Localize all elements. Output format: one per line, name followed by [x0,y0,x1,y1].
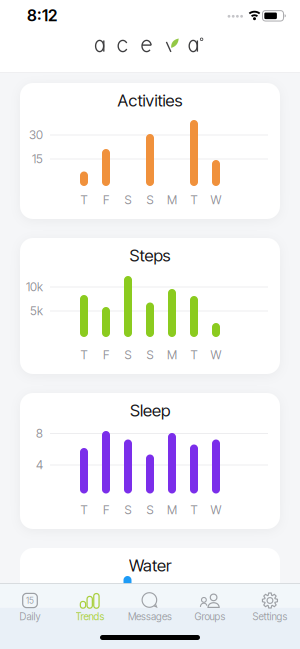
staticText: W [210,348,221,362]
staticText: 30 [29,128,43,142]
staticText: T [190,348,197,362]
staticText: S [124,193,131,207]
staticText: Settings [252,610,287,623]
staticText: S [124,348,131,362]
button[interactable]: Groups [180,584,240,628]
staticText: F [103,193,109,207]
button[interactable]: Activities [20,83,280,219]
staticText: 15 [26,595,34,606]
button[interactable]: 15 [0,584,60,628]
staticText: Trends [75,610,104,623]
staticText: 10k [26,280,43,294]
button[interactable]: Water [20,548,280,649]
staticText: Groups [194,610,225,623]
staticText: S [146,503,153,517]
staticText: 8:12 [27,6,57,25]
staticText: S [146,193,153,207]
staticText: Activities [117,90,182,111]
staticText: Sleep [130,400,170,421]
staticText: Steps [129,245,170,266]
button[interactable]: Messages [120,584,180,628]
button[interactable]: Settings [240,584,300,628]
staticText: T [190,193,197,207]
staticText: M [167,503,177,517]
staticText: W [210,503,221,517]
staticText: T [80,503,87,517]
staticText: S [124,503,131,517]
staticText: T [80,193,87,207]
staticText: M [167,348,177,362]
staticText: T [80,348,87,362]
staticText: Water [129,555,171,576]
staticText: Daily [19,610,40,623]
staticText: T [190,503,197,517]
staticText: 5k [30,304,43,318]
button[interactable]: Sleep [20,393,280,529]
staticText: S [146,348,153,362]
button[interactable]: Steps [20,238,280,374]
staticText: 15 [32,152,43,166]
staticText: 4 [36,458,43,472]
staticText: F [103,503,109,517]
staticText: W [210,193,221,207]
staticText: M [167,193,177,207]
button[interactable]: Trends [60,584,120,628]
staticText: Messages [128,610,172,623]
staticText: 8 [36,426,43,441]
staticText: F [103,348,109,362]
